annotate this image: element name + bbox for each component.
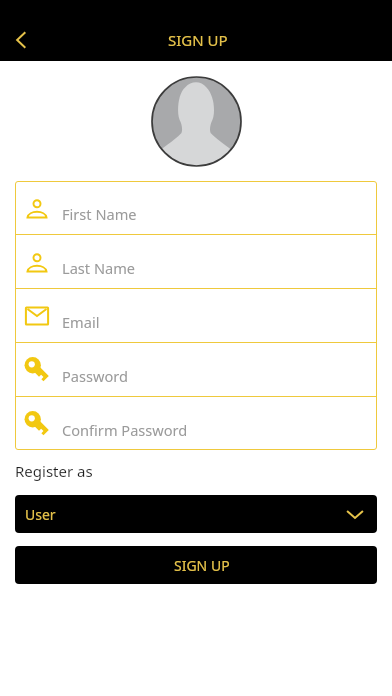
button[interactable]: Password: [15, 343, 377, 396]
button[interactable]: Confirm Password: [15, 397, 377, 450]
staticText: Register as: [15, 461, 93, 481]
staticText: Email: [62, 312, 100, 332]
staticText: Confirm Password: [62, 420, 188, 440]
staticText: SIGN UP: [174, 556, 230, 575]
button[interactable]: First Name: [15, 181, 377, 234]
staticText: SIGN UP: [168, 30, 228, 50]
staticText: First Name: [62, 204, 137, 224]
button[interactable]: SIGN UP: [15, 546, 377, 584]
staticText: Last Name: [62, 258, 136, 278]
other: Expand options: [344, 503, 366, 525]
staticText: Password: [62, 366, 129, 386]
button[interactable]: User: [15, 495, 377, 533]
button[interactable]: Email: [15, 289, 377, 342]
button[interactable]: Back: [0, 19, 42, 61]
staticText: User: [25, 505, 56, 524]
button[interactable]: Last Name: [15, 235, 377, 288]
